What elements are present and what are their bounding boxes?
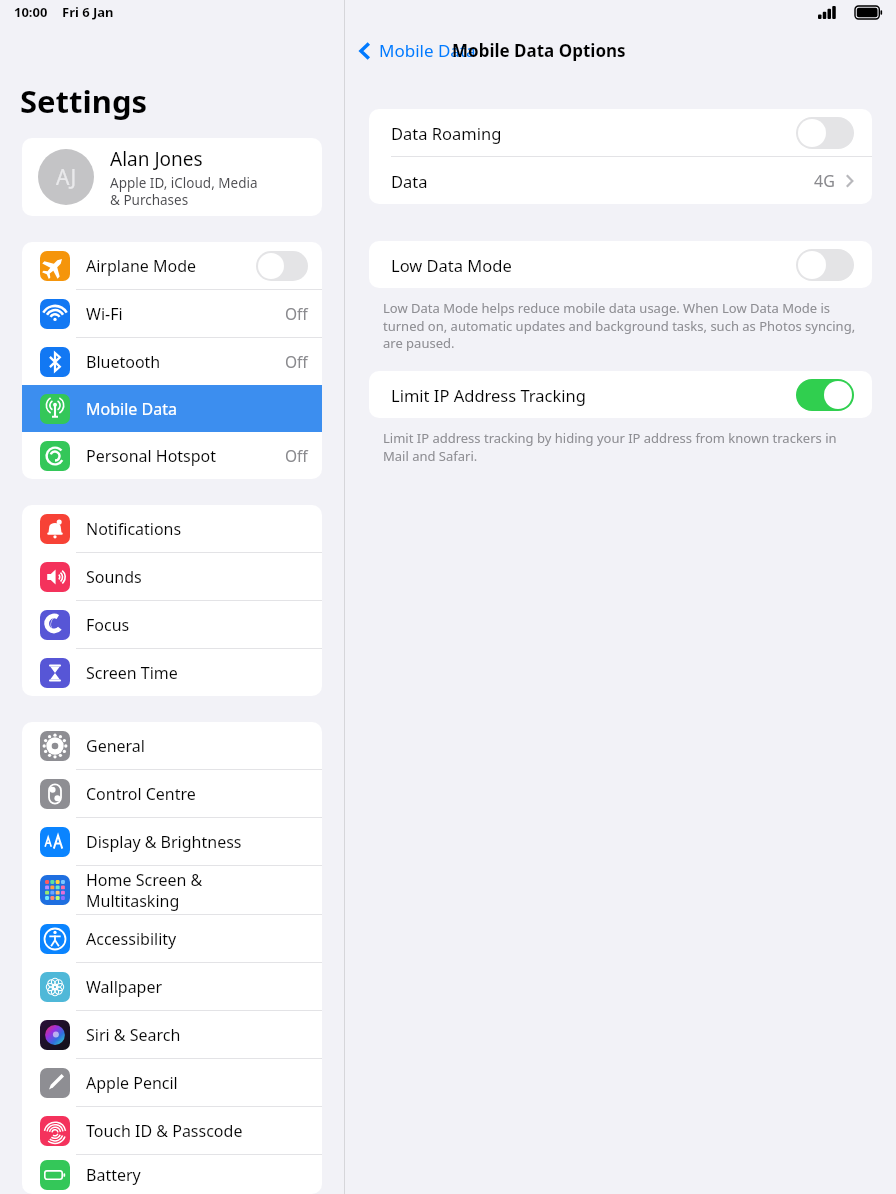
staticText: Off <box>285 351 308 372</box>
staticText: Home Screen & Multitasking <box>86 869 308 912</box>
staticText: 10:00 <box>14 3 48 21</box>
button[interactable]: Apple Pencil <box>22 1059 322 1106</box>
staticText: Notifications <box>86 518 308 540</box>
button[interactable]: Toggle off <box>796 249 854 281</box>
staticText: Focus <box>86 614 308 636</box>
staticText: Wi-Fi <box>86 303 285 325</box>
button[interactable]: Low Data Mode <box>369 241 872 288</box>
staticText: Fri 6 Jan <box>62 3 114 21</box>
staticText: Off <box>285 303 308 324</box>
staticText: Apple ID, iCloud, Media & Purchases <box>110 174 258 209</box>
staticText: Control Centre <box>86 783 308 805</box>
button[interactable]: Siri & Search <box>22 1011 322 1058</box>
staticText: Limit IP address tracking by hiding your… <box>383 429 858 465</box>
staticText: Battery <box>86 1164 308 1186</box>
staticText: Off <box>285 445 308 466</box>
button[interactable]: Control Centre <box>22 770 322 817</box>
staticText: Wallpaper <box>86 976 308 998</box>
button[interactable]: AJ <box>22 138 322 216</box>
button[interactable]: Focus <box>22 601 322 648</box>
staticText: AJ <box>56 163 77 192</box>
staticText: Limit IP Address Tracking <box>391 384 796 406</box>
button[interactable]: Data Roaming <box>369 109 872 156</box>
staticText: Siri & Search <box>86 1024 308 1046</box>
staticText: Data Roaming <box>391 122 796 144</box>
staticText: Alan Jones <box>110 146 203 172</box>
button[interactable]: Wi-Fi <box>22 290 322 337</box>
staticText: Low Data Mode <box>391 254 796 276</box>
button[interactable]: General <box>22 722 322 769</box>
button[interactable]: Limit IP Address Tracking <box>369 371 872 418</box>
button[interactable]: Wallpaper <box>22 963 322 1010</box>
button[interactable]: Sounds <box>22 553 322 600</box>
button[interactable]: Bluetooth <box>22 338 322 385</box>
button[interactable]: Screen Time <box>22 649 322 696</box>
staticText: Bluetooth <box>86 351 285 373</box>
button[interactable]: Toggle on <box>796 379 854 411</box>
button[interactable]: Home Screen & Multitasking <box>22 866 322 914</box>
button[interactable]: Notifications <box>22 505 322 552</box>
button[interactable]: Battery <box>22 1155 322 1194</box>
staticText: Apple Pencil <box>86 1072 308 1094</box>
staticText: Low Data Mode helps reduce mobile data u… <box>383 299 858 352</box>
staticText: Mobile Data <box>86 398 308 420</box>
button[interactable]: Mobile Data <box>22 385 322 432</box>
button[interactable]: Toggle off <box>256 251 308 281</box>
staticText: 4G <box>814 170 835 192</box>
button[interactable]: Display & Brightness <box>22 818 322 865</box>
staticText: Settings <box>20 80 148 122</box>
button[interactable]: Toggle off <box>796 117 854 149</box>
staticText: Data <box>391 170 814 192</box>
staticText: Airplane Mode <box>86 255 256 277</box>
staticText: Display & Brightness <box>86 831 308 853</box>
button[interactable]: Accessibility <box>22 915 322 962</box>
staticText: Mobile Data <box>379 39 476 62</box>
staticText: Personal Hotspot <box>86 445 285 467</box>
button[interactable]: Data <box>369 157 872 204</box>
staticText: Touch ID & Passcode <box>86 1120 308 1142</box>
button[interactable]: Personal Hotspot <box>22 432 322 479</box>
staticText: Sounds <box>86 566 308 588</box>
staticText: Accessibility <box>86 928 308 950</box>
staticText: Mobile Data Options <box>452 39 626 62</box>
staticText: Screen Time <box>86 662 308 684</box>
button[interactable]: Airplane Mode <box>22 242 322 289</box>
button[interactable]: Mobile Data <box>345 35 484 66</box>
button[interactable]: Touch ID & Passcode <box>22 1107 322 1154</box>
staticText: General <box>86 735 308 757</box>
